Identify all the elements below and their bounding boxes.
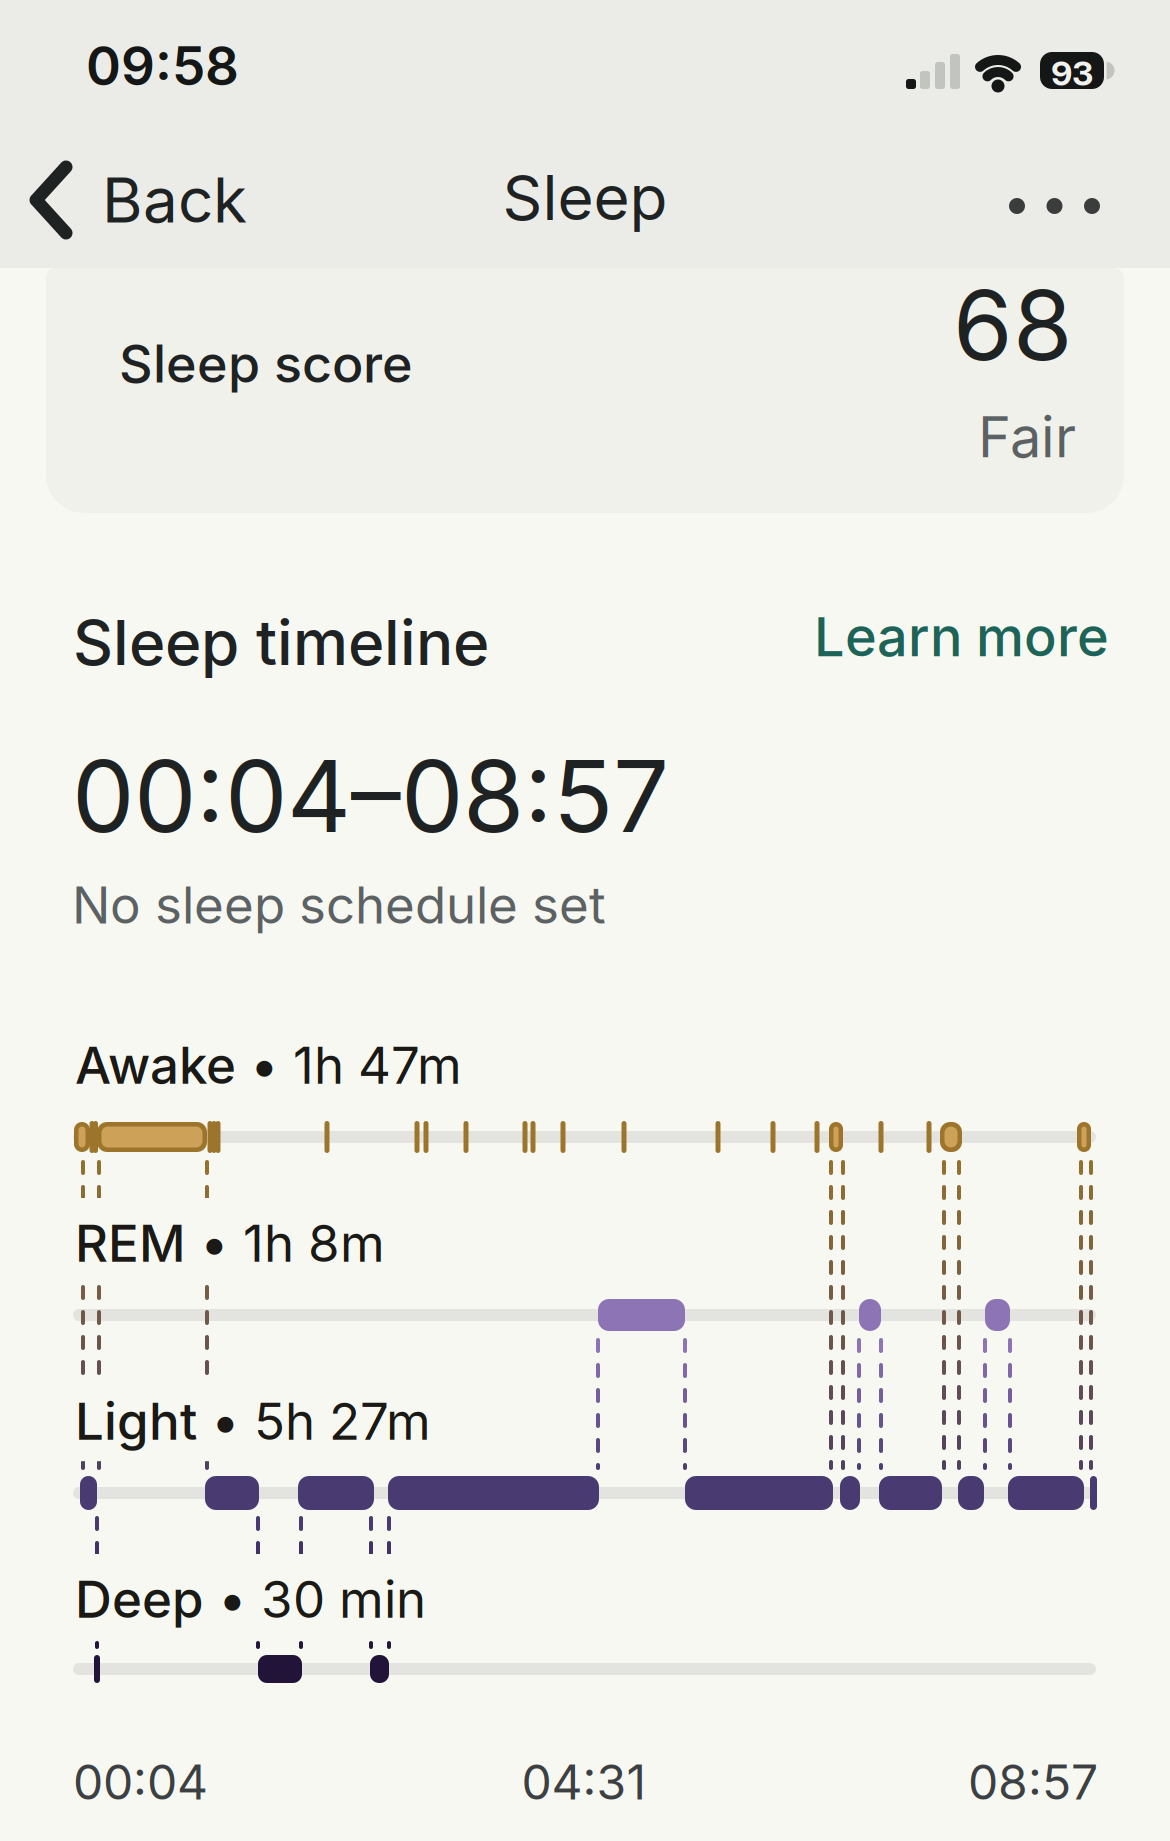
staticText: 09:58 xyxy=(86,34,239,98)
staticText: REM • 1h 8m xyxy=(75,1213,385,1273)
staticText: Learn more xyxy=(814,604,1109,669)
staticText: No sleep schedule set xyxy=(72,874,606,936)
staticText: Light • 5h 27m xyxy=(75,1391,431,1451)
staticText: Sleep timeline xyxy=(73,605,489,680)
staticText: Sleep xyxy=(502,160,667,235)
staticText: 08:57 xyxy=(968,1753,1098,1811)
staticText: Sleep score xyxy=(119,332,413,395)
staticText: Fair xyxy=(978,403,1076,471)
staticText: 00:04 xyxy=(73,1753,208,1811)
staticText: 00:04–08:57 xyxy=(72,736,669,856)
staticText: Awake • 1h 47m xyxy=(75,1035,462,1095)
staticText: Back xyxy=(102,162,247,237)
button[interactable]: Learn more xyxy=(814,604,1170,669)
button[interactable]: Sleep score xyxy=(46,268,1124,513)
button[interactable]: Back xyxy=(28,158,247,242)
staticText: 04:31 xyxy=(521,1753,646,1811)
staticText: Deep • 30 min xyxy=(75,1569,426,1629)
staticText: 93 xyxy=(1051,52,1093,94)
button[interactable]: More options xyxy=(1009,198,1100,214)
staticText: 68 xyxy=(953,267,1072,383)
